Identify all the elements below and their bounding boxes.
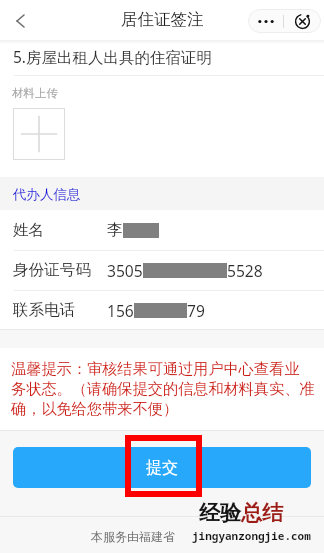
staticText: 材料上传 [12,86,58,100]
button[interactable]: 姓名 [0,210,324,250]
staticText: 经验 [199,500,241,526]
button[interactable]: Close [283,9,321,33]
staticText: 务状态。（请确保提交的信息和材料真实、准 [11,379,315,398]
staticText: 5528 [227,260,263,281]
staticText: 156 [107,300,134,321]
button[interactable]: Back [7,8,33,34]
staticText: 总结 [241,500,283,526]
staticText: 居住证签注 [121,9,204,30]
staticText: 联系电话 [13,300,76,320]
staticText: 李 [107,220,123,240]
button[interactable]: 联系电话 [0,290,324,330]
staticText: jingyanzongjie.com [192,528,311,543]
staticText: 5.房屋出租人出具的住宿证明 [13,46,213,67]
staticText: 79 [187,300,205,321]
button[interactable]: More [248,9,283,33]
button[interactable]: Upload material [13,108,65,160]
staticText: 本服务由福建省 [91,529,175,544]
staticText: 姓名 [13,220,45,240]
staticText: 身份证号码 [13,260,91,280]
button[interactable]: 身份证号码 [0,250,324,290]
button[interactable]: 提交 [13,447,311,488]
staticText: 确，以免给您带来不便） [11,399,179,418]
staticText: 3505 [107,260,143,281]
staticText: 提交 [146,458,178,478]
staticText: 温馨提示：审核结果可通过用户中心查看业 [11,359,300,378]
staticText: 代办人信息 [13,186,81,203]
